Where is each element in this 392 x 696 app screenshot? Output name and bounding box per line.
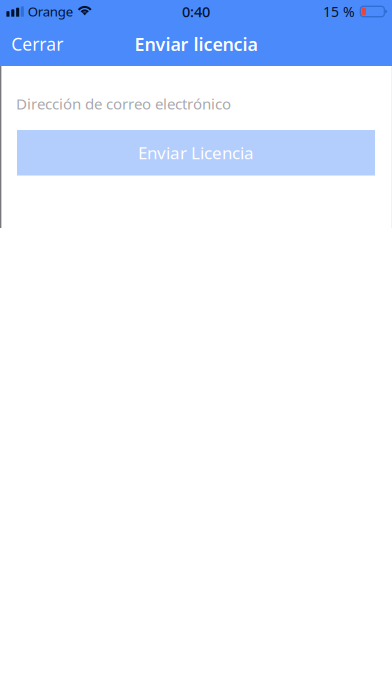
button[interactable]: Enviar Licencia (17, 130, 375, 175)
staticText: Orange (28, 2, 73, 20)
staticText: Enviar Licencia (138, 141, 254, 164)
staticText: Enviar licencia (134, 32, 257, 56)
staticText: Cerrar (11, 32, 63, 56)
staticText: 0:40 (182, 2, 210, 21)
staticText: 15 % (323, 2, 355, 21)
staticText: Dirección de correo electrónico (16, 93, 231, 114)
button[interactable]: Cerrar (0, 22, 75, 65)
